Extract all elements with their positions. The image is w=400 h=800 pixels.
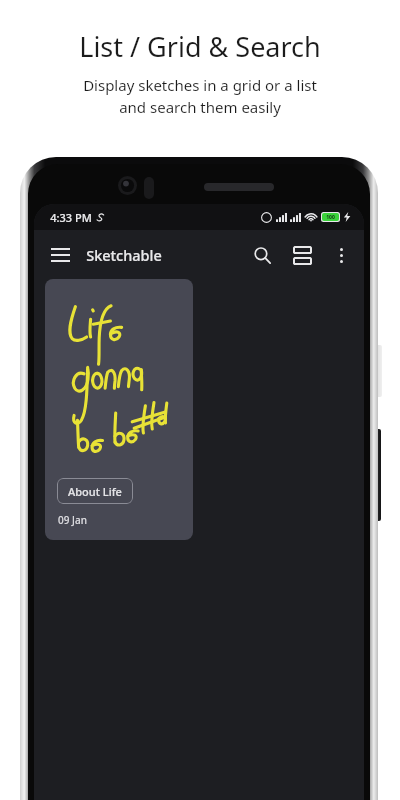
staticText: 4:33 PM xyxy=(50,210,92,225)
button[interactable]: Open navigation drawer xyxy=(42,237,78,273)
staticText: 100 xyxy=(326,214,335,220)
staticText: Display sketches in a grid or a list xyxy=(83,75,317,95)
staticText: Sketchable xyxy=(86,245,162,265)
staticText: About Life xyxy=(68,484,122,499)
button[interactable]: About Life xyxy=(57,478,133,504)
button[interactable]: About Life xyxy=(45,279,193,540)
staticText: and search them easily xyxy=(119,97,281,117)
staticText: 09 Jan xyxy=(58,513,87,527)
button[interactable]: More options xyxy=(322,236,360,274)
button[interactable]: Toggle list or grid view xyxy=(282,235,322,275)
button[interactable]: Search xyxy=(242,235,282,275)
staticText: List / Grid & Search xyxy=(79,28,321,65)
